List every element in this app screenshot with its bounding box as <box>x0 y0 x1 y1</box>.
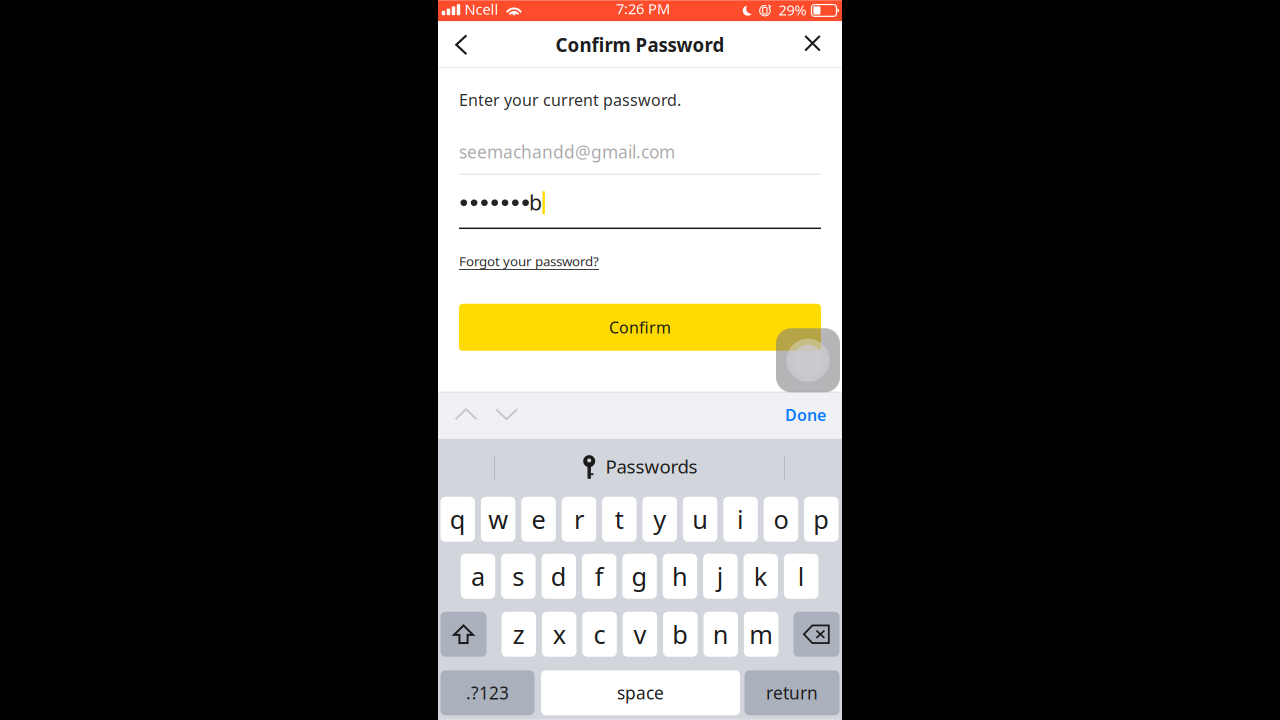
button[interactable]: i <box>723 497 758 542</box>
button[interactable]: y <box>642 497 677 542</box>
staticText: space <box>617 681 664 704</box>
button[interactable]: t <box>602 497 637 542</box>
staticText: o <box>773 502 788 536</box>
button[interactable]: x <box>542 612 576 657</box>
button[interactable]: Done <box>756 392 826 437</box>
staticText: p <box>813 502 829 536</box>
staticText: k <box>754 559 768 593</box>
button[interactable]: Delete <box>793 612 839 657</box>
staticText: f <box>595 559 604 593</box>
button[interactable]: g <box>622 554 657 599</box>
button[interactable]: v <box>623 612 657 657</box>
button[interactable]: f <box>582 554 616 599</box>
button[interactable]: z <box>501 612 536 657</box>
staticText: Ncell <box>464 0 498 19</box>
staticText: y <box>653 502 666 536</box>
staticText: z <box>513 617 525 651</box>
button[interactable]: Confirm <box>459 304 821 351</box>
staticText: Forgot your password? <box>459 252 599 270</box>
staticText: i <box>737 502 744 536</box>
staticText: Enter your current password. <box>459 89 681 110</box>
button[interactable]: c <box>582 612 617 657</box>
button[interactable]: Passwords <box>438 445 842 489</box>
staticText: seemachandd@gmail.com <box>459 140 675 163</box>
button[interactable]: s <box>501 554 536 599</box>
staticText: Done <box>785 404 826 425</box>
button[interactable]: a <box>461 554 495 599</box>
staticText: 7:26 PM <box>616 0 670 18</box>
button[interactable]: o <box>764 497 798 542</box>
button[interactable]: d <box>541 554 576 599</box>
staticText: u <box>692 502 708 536</box>
staticText: v <box>633 617 646 651</box>
staticText: h <box>672 559 688 593</box>
button[interactable]: return <box>744 670 839 715</box>
staticText: return <box>766 681 818 704</box>
button[interactable]: u <box>683 497 717 542</box>
button[interactable]: Previous field <box>446 392 486 437</box>
button[interactable]: p <box>804 497 839 542</box>
staticText: t <box>615 502 624 536</box>
button[interactable]: e <box>521 497 556 542</box>
staticText: n <box>713 617 729 651</box>
button[interactable]: Forgot your password? <box>459 252 599 270</box>
button[interactable]: k <box>743 554 778 599</box>
staticText: x <box>553 617 566 651</box>
button[interactable]: Close <box>790 20 834 67</box>
staticText: b <box>529 188 542 216</box>
staticText: r <box>574 502 584 536</box>
button[interactable]: b <box>663 612 698 657</box>
staticText: q <box>450 502 466 536</box>
staticText: a <box>471 559 485 593</box>
staticText: g <box>631 559 647 593</box>
staticText: m <box>749 617 773 651</box>
staticText: w <box>488 502 508 536</box>
staticText: j <box>717 559 724 593</box>
staticText: d <box>551 559 567 593</box>
button[interactable]: space <box>541 670 740 715</box>
button[interactable]: m <box>744 612 778 657</box>
staticText: b <box>672 617 688 651</box>
staticText: Confirm <box>609 317 671 338</box>
button[interactable]: Back <box>439 21 483 68</box>
staticText: e <box>531 502 545 536</box>
button[interactable]: r <box>562 497 596 542</box>
staticText: Confirm Password <box>555 32 724 57</box>
button[interactable]: n <box>703 612 738 657</box>
button[interactable]: q <box>440 497 475 542</box>
button[interactable]: w <box>481 497 515 542</box>
staticText: .?123 <box>466 681 509 704</box>
staticText: 29% <box>778 0 806 20</box>
staticText: c <box>593 617 605 651</box>
button[interactable]: l <box>784 554 818 599</box>
staticText: Passwords <box>605 454 697 479</box>
staticText: l <box>798 559 805 593</box>
button[interactable]: h <box>663 554 697 599</box>
button[interactable]: j <box>703 554 738 599</box>
button[interactable]: .?123 <box>440 670 534 715</box>
button[interactable]: Next field <box>486 392 526 437</box>
staticText: s <box>512 559 524 593</box>
button[interactable]: Shift <box>440 612 486 657</box>
